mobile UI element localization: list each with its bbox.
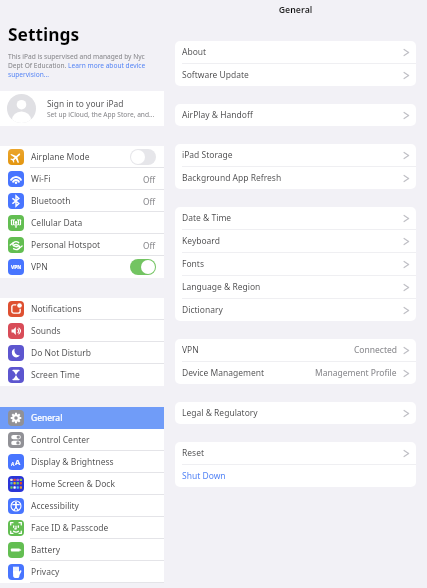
staticText: Home Screen & Dock	[31, 478, 115, 490]
button[interactable]: Device Management	[175, 362, 416, 384]
staticText: Personal Hotspot	[31, 239, 101, 251]
button[interactable]: A	[0, 451, 164, 473]
staticText: Date & Time	[182, 212, 232, 224]
staticText: Device Management	[182, 367, 265, 379]
button[interactable]: Do Not Disturb	[0, 342, 164, 364]
staticText: Do Not Disturb	[31, 347, 91, 359]
staticText: A	[11, 461, 15, 468]
staticText: Keyboard	[182, 235, 220, 247]
staticText: Notifications	[31, 303, 82, 315]
staticText: Set up iCloud, the App Store, and...	[47, 110, 155, 119]
button[interactable]: VPN	[175, 339, 416, 361]
button[interactable]: Reset	[175, 442, 416, 464]
button[interactable]: Dictionary	[175, 299, 416, 321]
button[interactable]: VPN	[0, 256, 164, 278]
button[interactable]: Wi-Fi	[0, 168, 164, 190]
staticText: Fonts	[182, 258, 204, 270]
staticText: Control Center	[31, 434, 90, 446]
staticText: A	[15, 457, 21, 468]
button[interactable]: Software Update	[175, 64, 416, 86]
staticText: VPN	[182, 344, 199, 356]
button[interactable]: AirPlay & Handoff	[175, 104, 416, 126]
button[interactable]: About	[175, 41, 416, 63]
button[interactable]: Privacy	[0, 561, 164, 583]
button[interactable]: Toggle	[130, 149, 156, 165]
staticText: Cellular Data	[31, 217, 83, 229]
staticText: Display & Brightness	[31, 456, 114, 468]
staticText: Legal & Regulatory	[182, 407, 258, 419]
button[interactable]: Accessibility	[0, 495, 164, 517]
button[interactable]: Keyboard	[175, 230, 416, 252]
button[interactable]: Toggle	[130, 259, 156, 275]
staticText: iPad Storage	[182, 149, 233, 161]
staticText: Airplane Mode	[31, 151, 90, 163]
staticText: Off	[143, 174, 156, 185]
button[interactable]: Date & Time	[175, 207, 416, 229]
button[interactable]: General	[0, 407, 164, 429]
button[interactable]: Screen Time	[0, 364, 164, 386]
staticText: Battery	[31, 544, 61, 556]
button[interactable]: Background App Refresh	[175, 167, 416, 189]
staticText: Management Profile	[315, 367, 397, 379]
staticText: Dictionary	[182, 304, 223, 316]
button[interactable]: Bluetooth	[0, 190, 164, 212]
button[interactable]: Shut Down	[175, 465, 416, 487]
staticText: Screen Time	[31, 369, 80, 381]
staticText: General	[31, 412, 63, 424]
staticText: VPN	[11, 264, 22, 271]
staticText: Privacy	[31, 566, 60, 578]
button[interactable]: Face ID & Passcode	[0, 517, 164, 539]
button[interactable]: Fonts	[175, 253, 416, 275]
staticText: Face ID & Passcode	[31, 522, 109, 534]
staticText: Off	[143, 240, 156, 251]
staticText: AirPlay & Handoff	[182, 109, 253, 121]
staticText: Background App Refresh	[182, 172, 282, 184]
button[interactable]: Sounds	[0, 320, 164, 342]
staticText: VPN	[31, 261, 48, 273]
staticText: Sounds	[31, 325, 61, 337]
button[interactable]: Notifications	[0, 298, 164, 320]
staticText: General	[164, 4, 427, 16]
button[interactable]: Cellular Data	[0, 212, 164, 234]
staticText: Off	[143, 196, 156, 207]
button[interactable]: Personal Hotspot	[0, 234, 164, 256]
button[interactable]: iPad Storage	[175, 144, 416, 166]
staticText: Bluetooth	[31, 195, 71, 207]
button[interactable]: Language & Region	[175, 276, 416, 298]
staticText: This iPad is supervised and managed by N…	[8, 52, 146, 79]
staticText: About	[182, 46, 207, 58]
button[interactable]: Control Center	[0, 429, 164, 451]
staticText: Accessibility	[31, 500, 79, 512]
staticText: Connected	[354, 344, 397, 356]
button[interactable]: Sign in to your iPad	[0, 91, 164, 126]
staticText: Shut Down	[182, 470, 226, 482]
button[interactable]: Legal & Regulatory	[175, 402, 416, 424]
button[interactable]: Battery	[0, 539, 164, 561]
staticText: Settings	[8, 22, 80, 46]
button[interactable]: Home Screen & Dock	[0, 473, 164, 495]
button[interactable]: Airplane Mode	[0, 146, 164, 168]
staticText: Language & Region	[182, 281, 261, 293]
staticText: Reset	[182, 447, 205, 459]
staticText: Sign in to your iPad	[47, 98, 124, 109]
staticText: Wi-Fi	[31, 173, 51, 185]
staticText: Software Update	[182, 69, 249, 81]
